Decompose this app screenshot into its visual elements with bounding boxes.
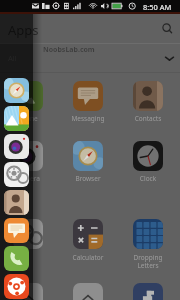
staticText: Camera (0, 174, 58, 183)
staticText: Messaging (58, 114, 118, 123)
staticText: NoobsLab.com (43, 45, 95, 55)
button[interactable]: Messaging (4, 218, 29, 243)
button[interactable]: Search (156, 17, 180, 41)
button[interactable]: Browser (73, 141, 103, 171)
button[interactable]: App (13, 283, 43, 300)
staticText: 8:50 AM (143, 2, 172, 12)
button[interactable]: Phone (4, 246, 29, 271)
button[interactable]: Gallery (4, 106, 29, 131)
staticText: Apps (8, 21, 39, 39)
button[interactable]: Camera (13, 141, 43, 171)
button[interactable]: Ubuntu (4, 274, 29, 299)
staticText: Clock (118, 174, 178, 183)
button[interactable]: Camera (4, 134, 29, 159)
button[interactable]: Videos (4, 162, 29, 187)
staticText: Letters (118, 261, 178, 270)
button[interactable]: Dropping Letters (133, 219, 163, 249)
button[interactable]: Videos (13, 219, 43, 249)
button[interactable]: Calculator (73, 219, 103, 249)
staticText: Browser (58, 174, 118, 183)
button[interactable]: App (73, 283, 103, 300)
staticText: Contacts (118, 114, 178, 123)
button[interactable]: Facebook (133, 283, 163, 300)
button[interactable]: Contacts (4, 190, 29, 215)
button[interactable]: Clock (133, 141, 163, 171)
button[interactable]: Browser (4, 78, 29, 103)
button[interactable]: Messaging (73, 81, 103, 111)
button[interactable]: Expand category (158, 47, 180, 69)
staticText: Dropping (118, 253, 178, 262)
staticText: Phone (0, 114, 58, 123)
staticText: All (8, 53, 17, 63)
button[interactable]: Contacts (133, 81, 163, 111)
button[interactable]: Phone (13, 81, 43, 111)
staticText: Calculator (58, 253, 118, 262)
